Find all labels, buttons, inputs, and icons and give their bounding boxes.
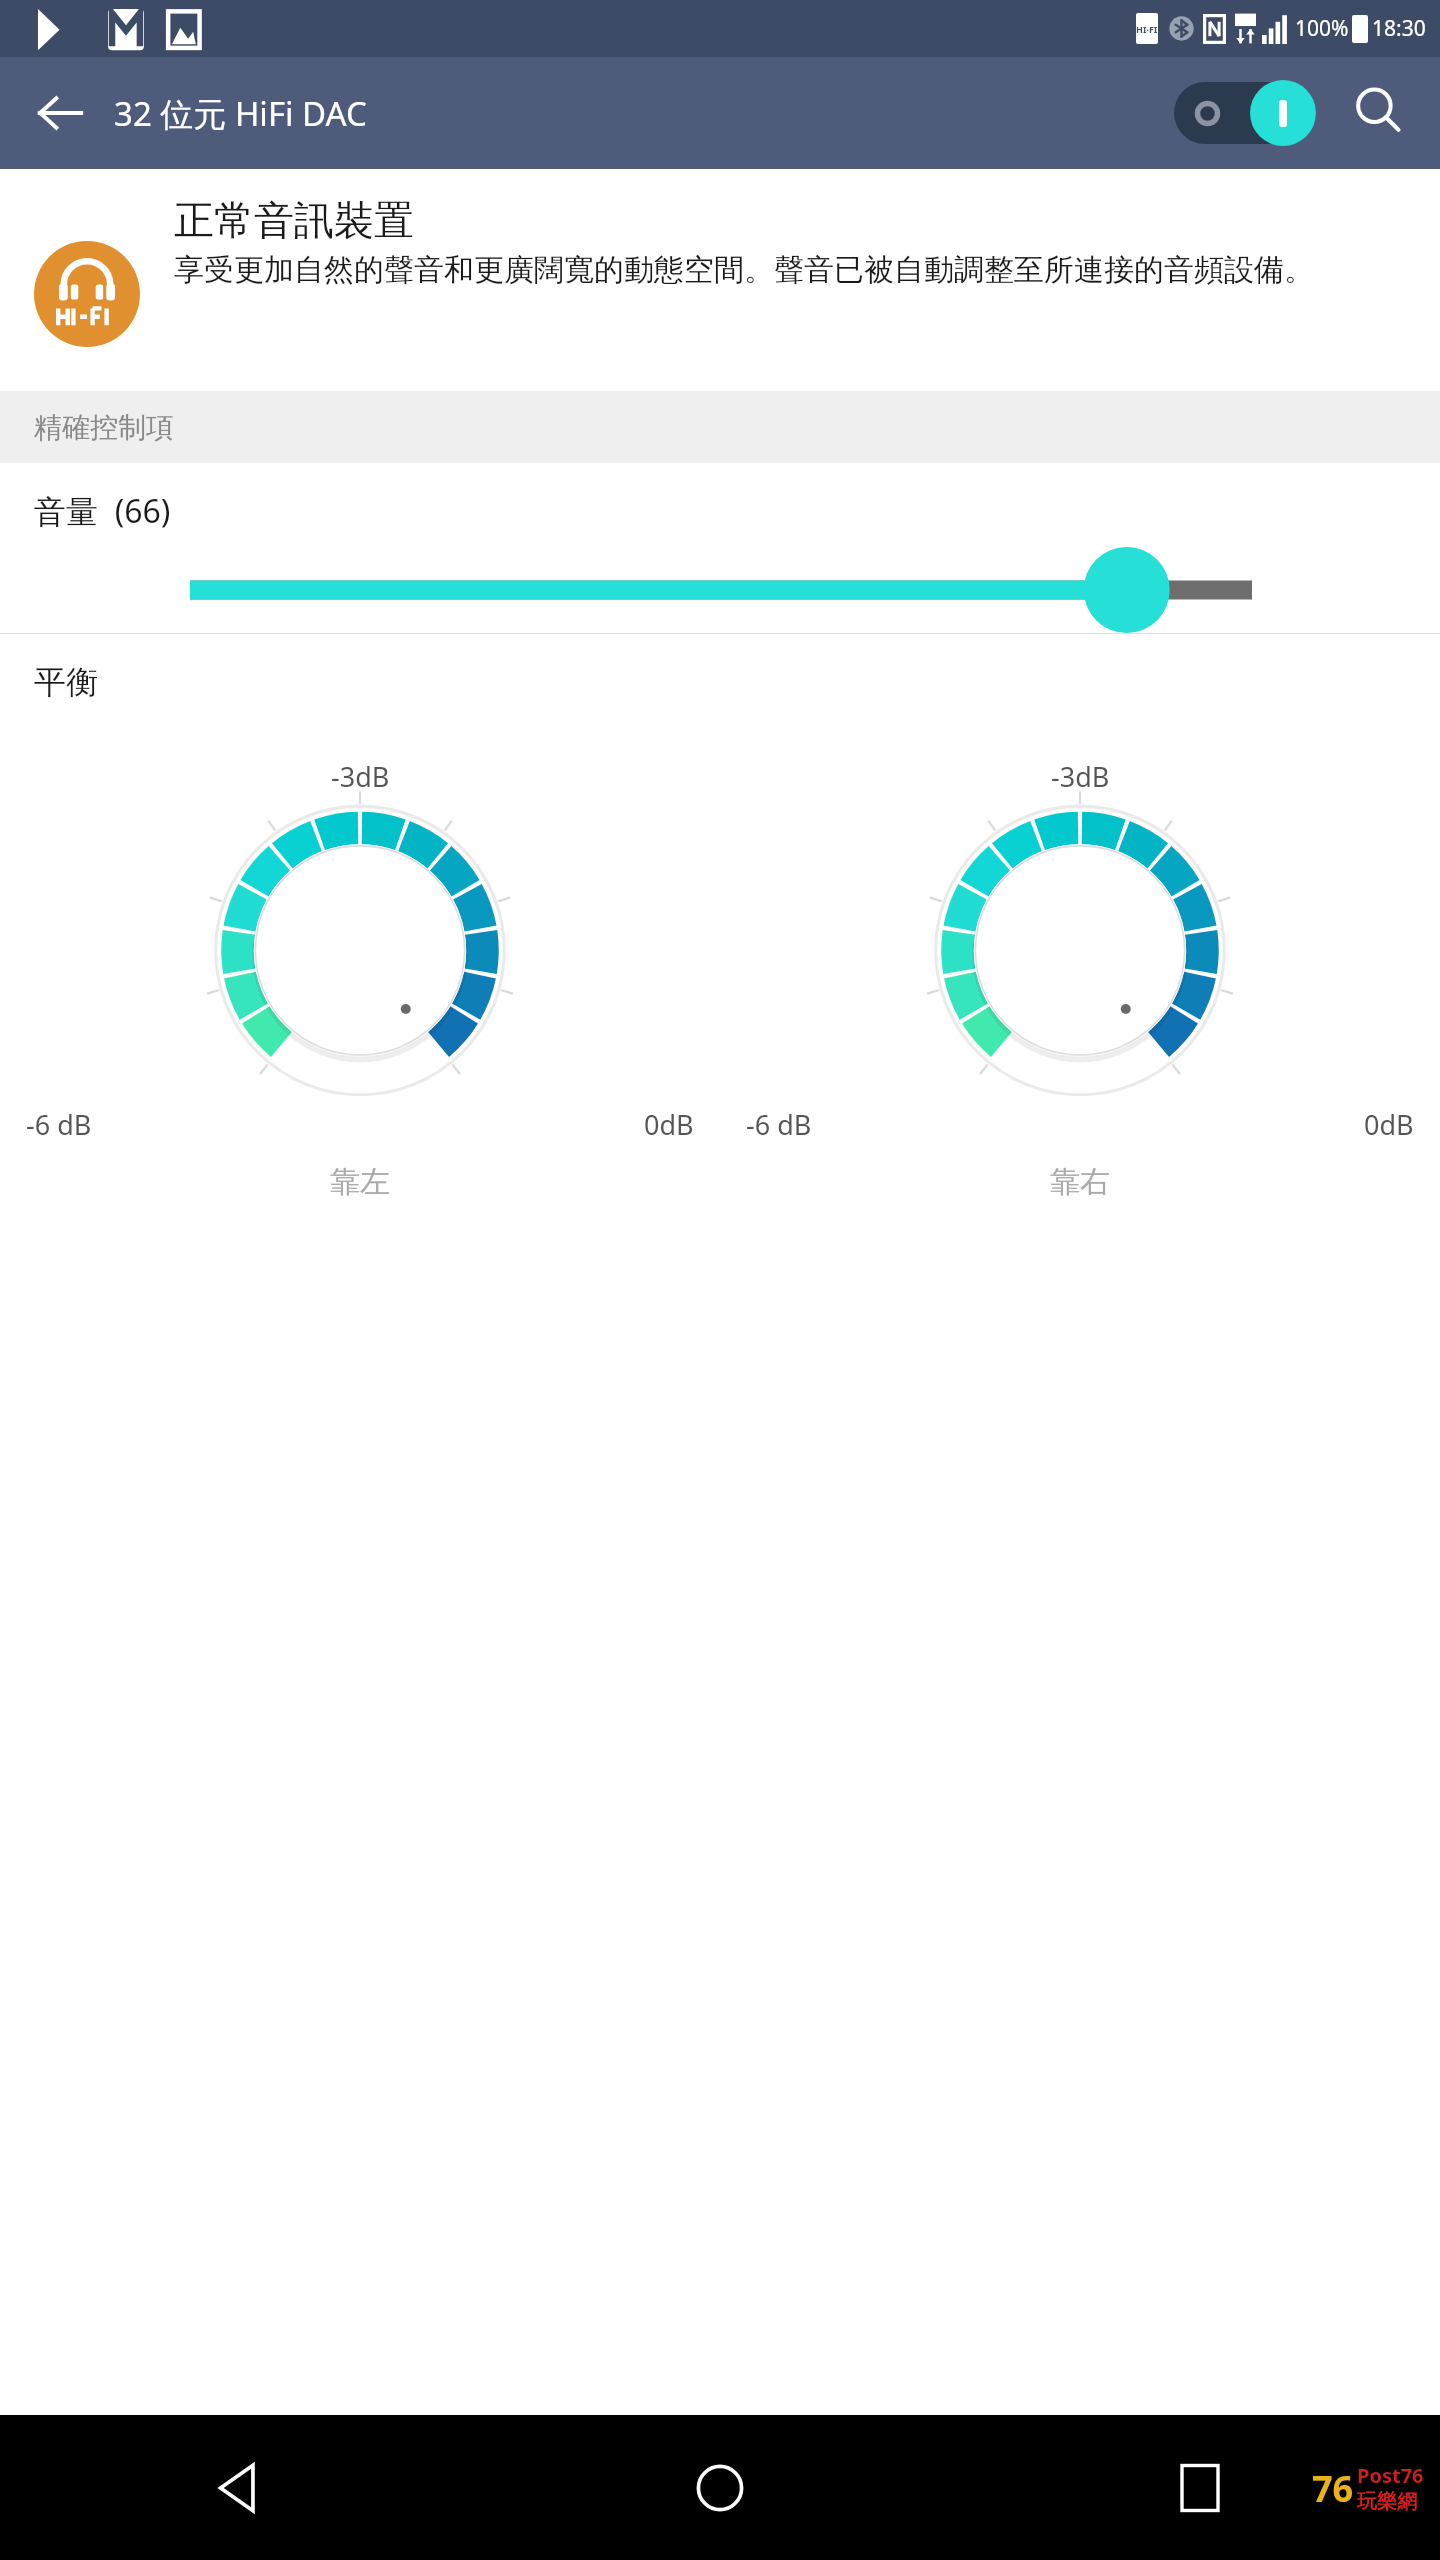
staticText: 76 [1312,2464,1354,2513]
button[interactable]: Back [20,73,100,153]
button[interactable]: 音量 (66) [0,463,1440,633]
staticText: HI·FI [1136,23,1158,35]
staticText: 享受更加自然的聲音和更廣闊寬的動態空間。聲音已被自動調整至所連接的音頻設備。 [174,251,1314,289]
staticText: 精確控制項 [34,410,174,445]
button[interactable]: Search [1340,73,1420,153]
staticText: -3dB [331,758,390,795]
staticText: 0dB [1364,1106,1414,1143]
button[interactable]: Home [480,2415,960,2560]
staticText: Post76 [1357,2462,1424,2489]
staticText: 18:30 [1372,14,1426,43]
staticText: -6 dB [746,1106,812,1143]
staticText: 100% [1295,14,1349,43]
button[interactable]: 靠右 [720,758,1440,1201]
staticText: -3dB [1051,758,1110,795]
staticText: 平衡 [34,662,98,702]
staticText: 正常音訊裝置 [174,195,414,245]
staticText: -6 dB [26,1106,92,1143]
staticText: 32 位元 HiFi DAC [114,91,367,136]
staticText: 音量 (66) [34,489,171,533]
staticText: 靠左 [330,1163,390,1201]
staticText: 靠右 [1050,1163,1110,1201]
button[interactable]: Back [0,2415,480,2560]
button[interactable]: HiFi DAC toggle [1174,80,1316,146]
button[interactable]: Recent apps [960,2415,1440,2560]
staticText: 玩樂網 [1357,2489,1417,2514]
staticText: 0dB [644,1106,694,1143]
button[interactable]: 靠左 [0,758,720,1201]
